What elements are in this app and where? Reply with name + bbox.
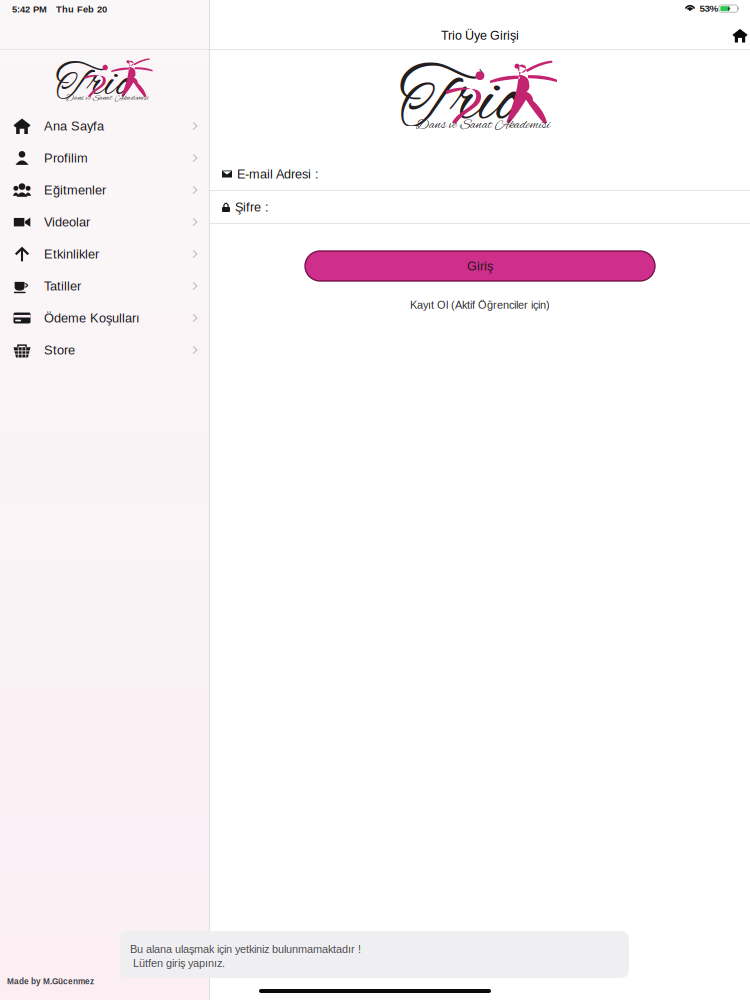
staticText: Made by M.Gücenmez	[7, 977, 94, 986]
button[interactable]: Kayıt Ol (Aktif Öğrenciler için)	[330, 288, 630, 322]
button[interactable]: Profilim	[0, 142, 210, 174]
staticText: Ödeme Koşulları	[44, 311, 140, 325]
button[interactable]: Etkinlikler	[0, 238, 210, 270]
staticText: Trio Üye Girişi	[441, 28, 519, 42]
staticText: E-mail Adresi :	[237, 167, 319, 181]
button[interactable]: Eğitmenler	[0, 174, 210, 206]
staticText: Bu alana ulaşmak için yetkiniz bulunmama…	[130, 943, 361, 955]
button[interactable]: Ana Sayfa	[0, 110, 210, 142]
staticText: 5:42 PM Thu Feb 20	[12, 4, 107, 14]
staticText: Şifre :	[235, 200, 269, 214]
button[interactable]: Store	[0, 334, 210, 366]
staticText: Dans ve Sanat Akademisi	[416, 117, 550, 134]
staticText: Profilim	[44, 151, 88, 165]
staticText: Giriş	[467, 259, 493, 273]
button[interactable]: Ana Sayfa	[726, 22, 750, 49]
staticText: Trio	[399, 55, 519, 151]
staticText: Store	[44, 343, 75, 357]
staticText: Etkinlikler	[44, 247, 99, 261]
staticText: Videolar	[44, 215, 90, 229]
button[interactable]: Giriş	[305, 251, 655, 281]
staticText: Eğitmenler	[44, 183, 106, 197]
staticText: Ana Sayfa	[44, 119, 104, 133]
staticText: Dans ve Sanat Akademisi	[66, 93, 149, 103]
button[interactable]: Ödeme Koşulları	[0, 302, 210, 334]
staticText: Trio	[55, 55, 129, 114]
staticText: Lütfen giriş yapınız.	[133, 957, 225, 969]
staticText: 53%	[699, 3, 718, 14]
staticText: Kayıt Ol (Aktif Öğrenciler için)	[410, 299, 550, 311]
staticText: Tatiller	[44, 279, 81, 293]
button[interactable]: Videolar	[0, 206, 210, 238]
button[interactable]: Tatiller	[0, 270, 210, 302]
